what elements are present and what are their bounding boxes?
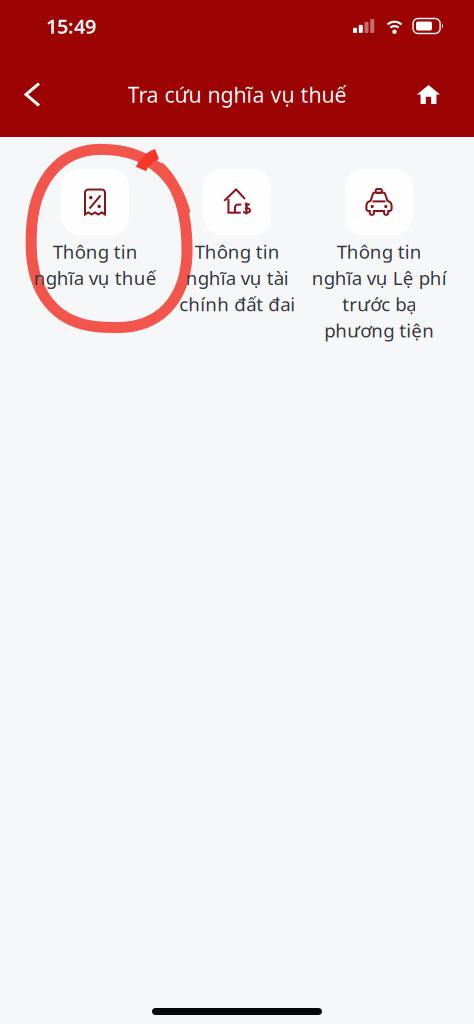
staticText: 15:49	[46, 13, 96, 39]
staticText: Thông tin nghĩa vụ Lệ phí trước bạ phươn…	[311, 239, 446, 343]
button[interactable]: Thông tin nghĩa vụ thuế	[24, 169, 166, 572]
button[interactable]: Thông tin nghĩa vụ tài chính đất đai	[166, 169, 308, 572]
staticText: Tra cứu nghĩa vụ thuế	[127, 80, 346, 109]
staticText: Thông tin nghĩa vụ tài chính đất đai	[179, 239, 295, 316]
staticText: Thông tin nghĩa vụ thuế	[33, 239, 156, 290]
button[interactable]: Back	[12, 71, 53, 117]
button[interactable]: Thông tin nghĩa vụ Lệ phí trước bạ phươn…	[308, 169, 450, 572]
button[interactable]: Home	[406, 73, 451, 116]
